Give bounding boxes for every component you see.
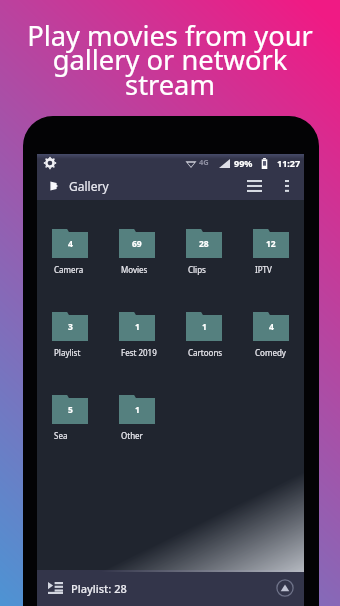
button[interactable]: 5	[52, 395, 119, 441]
button[interactable]: 28	[186, 229, 253, 275]
button[interactable]: 1	[119, 312, 186, 358]
button[interactable]: Expand playlist	[273, 576, 297, 600]
staticText: 99%	[234, 157, 253, 169]
button[interactable]: 3	[52, 312, 119, 358]
staticText: Playlist: 28	[71, 581, 127, 596]
staticText: 11:27	[277, 157, 301, 169]
staticText: 28	[199, 238, 209, 250]
button[interactable]: 4	[253, 312, 304, 358]
button[interactable]: 4	[52, 229, 119, 275]
button[interactable]: 69	[119, 229, 186, 275]
staticText: 3	[68, 321, 73, 333]
staticText: 1	[135, 404, 140, 416]
staticText: Cartoons	[188, 347, 223, 358]
staticText: 4	[68, 238, 73, 250]
staticText: 1	[202, 321, 207, 333]
staticText: Gallery	[69, 178, 109, 194]
staticText: Sea	[54, 430, 68, 441]
staticText: 1	[135, 321, 140, 333]
staticText: Camera	[54, 264, 84, 275]
staticText: Comedy	[255, 347, 286, 358]
staticText: 4G	[199, 157, 209, 167]
staticText: 4	[269, 321, 274, 333]
staticText: 69	[132, 238, 142, 250]
button[interactable]: More options	[277, 172, 297, 200]
staticText: Other	[121, 430, 143, 441]
staticText: Playlist	[54, 347, 81, 358]
button[interactable]: Sort list	[241, 172, 268, 200]
staticText: IPTV	[255, 264, 272, 275]
staticText: Fest 2019	[121, 347, 157, 358]
button[interactable]: 1	[119, 395, 186, 441]
staticText: 5	[68, 404, 73, 416]
staticText: 12	[266, 238, 276, 250]
staticText: Movies	[121, 264, 148, 275]
staticText: Clips	[188, 264, 206, 275]
button[interactable]: 1	[186, 312, 253, 358]
staticText: Play movies from your gallery or network…	[0, 17, 340, 103]
button[interactable]: 12	[253, 229, 304, 275]
